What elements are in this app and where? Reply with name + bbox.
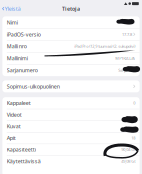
staticText: 90,04 Gt [121,147,135,152]
button[interactable]: Kapasiteetti [2,144,140,155]
button[interactable]: iPadOS-versio [2,28,140,40]
staticText: 49,08 Gt [121,158,135,164]
button[interactable]: Kappaleet [2,97,140,109]
button[interactable]: Apit [2,132,140,144]
staticText: iPad Pro (12,9 tuumaa) (2. sukupolvi) [74,44,135,49]
staticText: Käytettävissä [7,158,41,165]
staticText: Mallinimi [7,55,28,62]
button[interactable]: Mallinimi [2,52,140,64]
staticText: 18 [131,135,135,140]
staticText: MP1R2LL/A [115,56,135,61]
staticText: Kapasiteetti [7,146,36,153]
button[interactable]: Malli nro [2,40,140,52]
staticText: Videot [7,111,22,118]
staticText: iPadi [124,20,132,25]
button[interactable]: Yleistä [2,5,21,12]
staticText: iPadOS-versio [7,31,41,38]
staticText: Malli nro [7,43,27,50]
button[interactable]: Kuvat [2,120,140,132]
staticText: Kuvat [7,123,21,130]
staticText: Sarjanumero [7,67,38,74]
staticText: Nimi [7,19,18,26]
button[interactable]: Videot [2,109,140,120]
button[interactable]: Sarjanumero [2,64,140,76]
staticText: Sopimus-ulkopuolinen [7,83,60,90]
staticText: Yleistä [5,5,21,12]
staticText: Tietoja [62,5,80,12]
staticText: Sarjanro [118,67,135,73]
staticText: Apit [7,134,16,141]
staticText: 17.7.8 [122,32,132,37]
button[interactable]: Sopimus-ulkopuolinen [2,80,140,92]
staticText: Kappaleet [7,99,31,107]
button[interactable]: Käytettävissä [2,155,140,167]
staticText: 0 [133,100,135,106]
button[interactable]: Nimi [2,16,140,28]
